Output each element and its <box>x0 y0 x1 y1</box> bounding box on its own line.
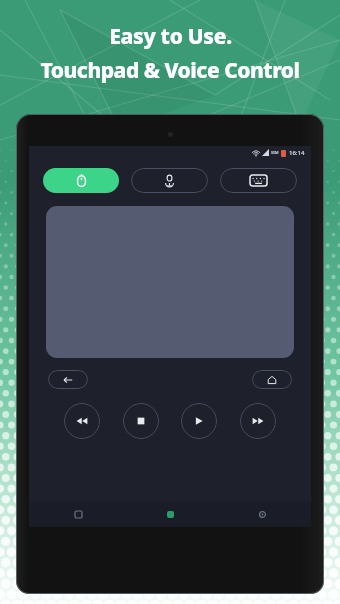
button[interactable]: Fast forward <box>240 403 276 439</box>
staticText: Easy to Use. <box>109 22 232 51</box>
button[interactable]: Home <box>252 370 292 389</box>
button[interactable]: Touchpad mode <box>43 168 119 193</box>
button[interactable]: Back <box>48 370 88 389</box>
button[interactable]: Remote <box>161 505 179 523</box>
staticText: SIM <box>271 150 279 155</box>
staticText: 16:14 <box>289 149 305 157</box>
button[interactable]: Settings <box>253 505 271 523</box>
button[interactable]: Keyboard <box>220 168 297 193</box>
button[interactable]: Stop <box>123 403 159 439</box>
staticText: Touchpad & Voice Control <box>40 56 300 85</box>
button[interactable]: Voice control <box>131 168 208 193</box>
button[interactable]: Rewind <box>64 403 100 439</box>
button[interactable]: Devices <box>69 505 87 523</box>
button[interactable]: Touchpad area <box>46 206 294 358</box>
button[interactable]: Play <box>181 403 217 439</box>
